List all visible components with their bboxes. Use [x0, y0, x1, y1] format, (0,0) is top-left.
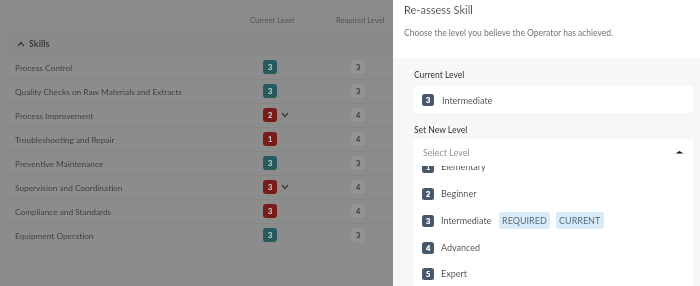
button[interactable]: 2 — [413, 180, 693, 207]
staticText: 3 — [426, 217, 431, 226]
staticText: Advanced — [441, 242, 481, 253]
staticText: 3 — [356, 87, 361, 96]
button[interactable]: Skills — [8, 32, 393, 55]
staticText: Choose the level you believe the Operato… — [404, 28, 613, 38]
staticText: Beginner — [441, 188, 477, 199]
staticText: 3 — [356, 231, 361, 240]
button[interactable]: Select Level — [413, 139, 693, 166]
staticText: Quality Checks on Raw Materials and Extr… — [15, 87, 182, 97]
button[interactable]: 3 — [413, 86, 693, 113]
staticText: Required Level — [336, 16, 385, 25]
staticText: Process Improvement — [15, 111, 94, 121]
staticText: Troubleshooting and Repair — [15, 135, 115, 145]
staticText: Set New Level — [414, 125, 468, 135]
staticText: 4 — [356, 111, 361, 120]
staticText: 3 — [268, 159, 273, 168]
staticText: Intermediate — [442, 95, 493, 106]
button[interactable]: Process Control — [0, 55, 393, 79]
button[interactable]: Equipment Operation — [0, 223, 393, 247]
staticText: Process Control — [15, 63, 73, 73]
staticText: 5 — [426, 270, 431, 279]
staticText: Current Level — [250, 16, 295, 25]
staticText: Skills — [29, 38, 50, 49]
staticText: 4 — [356, 207, 361, 216]
staticText: Equipment Operation — [15, 231, 94, 241]
staticText: Elementary — [441, 166, 486, 172]
staticText: 1 — [268, 135, 273, 144]
staticText: 3 — [268, 183, 273, 192]
staticText: 4 — [356, 183, 361, 192]
staticText: 1 — [426, 166, 431, 172]
other: Collapse level list — [675, 148, 684, 157]
staticText: 2 — [268, 111, 273, 120]
staticText: 3 — [356, 159, 361, 168]
staticText: Supervision and Coordination — [15, 183, 123, 193]
staticText: Compliance and Standards — [15, 207, 112, 217]
button[interactable]: 5 — [413, 260, 693, 286]
staticText: Re-assess Skill — [404, 3, 473, 16]
button[interactable]: 3 — [413, 207, 693, 234]
staticText: 4 — [426, 244, 431, 253]
button[interactable]: Compliance and Standards — [0, 199, 393, 223]
staticText: 3 — [356, 63, 361, 72]
button[interactable]: Quality Checks on Raw Materials and Extr… — [0, 79, 393, 103]
staticText: Expert — [441, 268, 467, 279]
button[interactable]: 4 — [413, 234, 693, 261]
staticText: REQUIRED — [502, 215, 547, 226]
staticText: Select Level — [423, 147, 470, 158]
button[interactable]: 1 — [413, 166, 693, 180]
button[interactable]: Troubleshooting and Repair — [0, 127, 393, 151]
staticText: 3 — [268, 207, 273, 216]
button[interactable]: Preventive Maintenance — [0, 151, 393, 175]
button[interactable]: Supervision and Coordination — [0, 175, 393, 199]
staticText: Current Level — [414, 70, 465, 80]
staticText: 3 — [426, 96, 431, 105]
staticText: 3 — [268, 87, 273, 96]
staticText: 3 — [268, 231, 273, 240]
staticText: 4 — [356, 135, 361, 144]
staticText: Intermediate — [441, 215, 492, 226]
staticText: 2 — [426, 190, 431, 199]
staticText: 3 — [268, 63, 273, 72]
button[interactable]: Process Improvement — [0, 103, 393, 127]
staticText: CURRENT — [559, 215, 601, 226]
staticText: Preventive Maintenance — [15, 159, 104, 169]
